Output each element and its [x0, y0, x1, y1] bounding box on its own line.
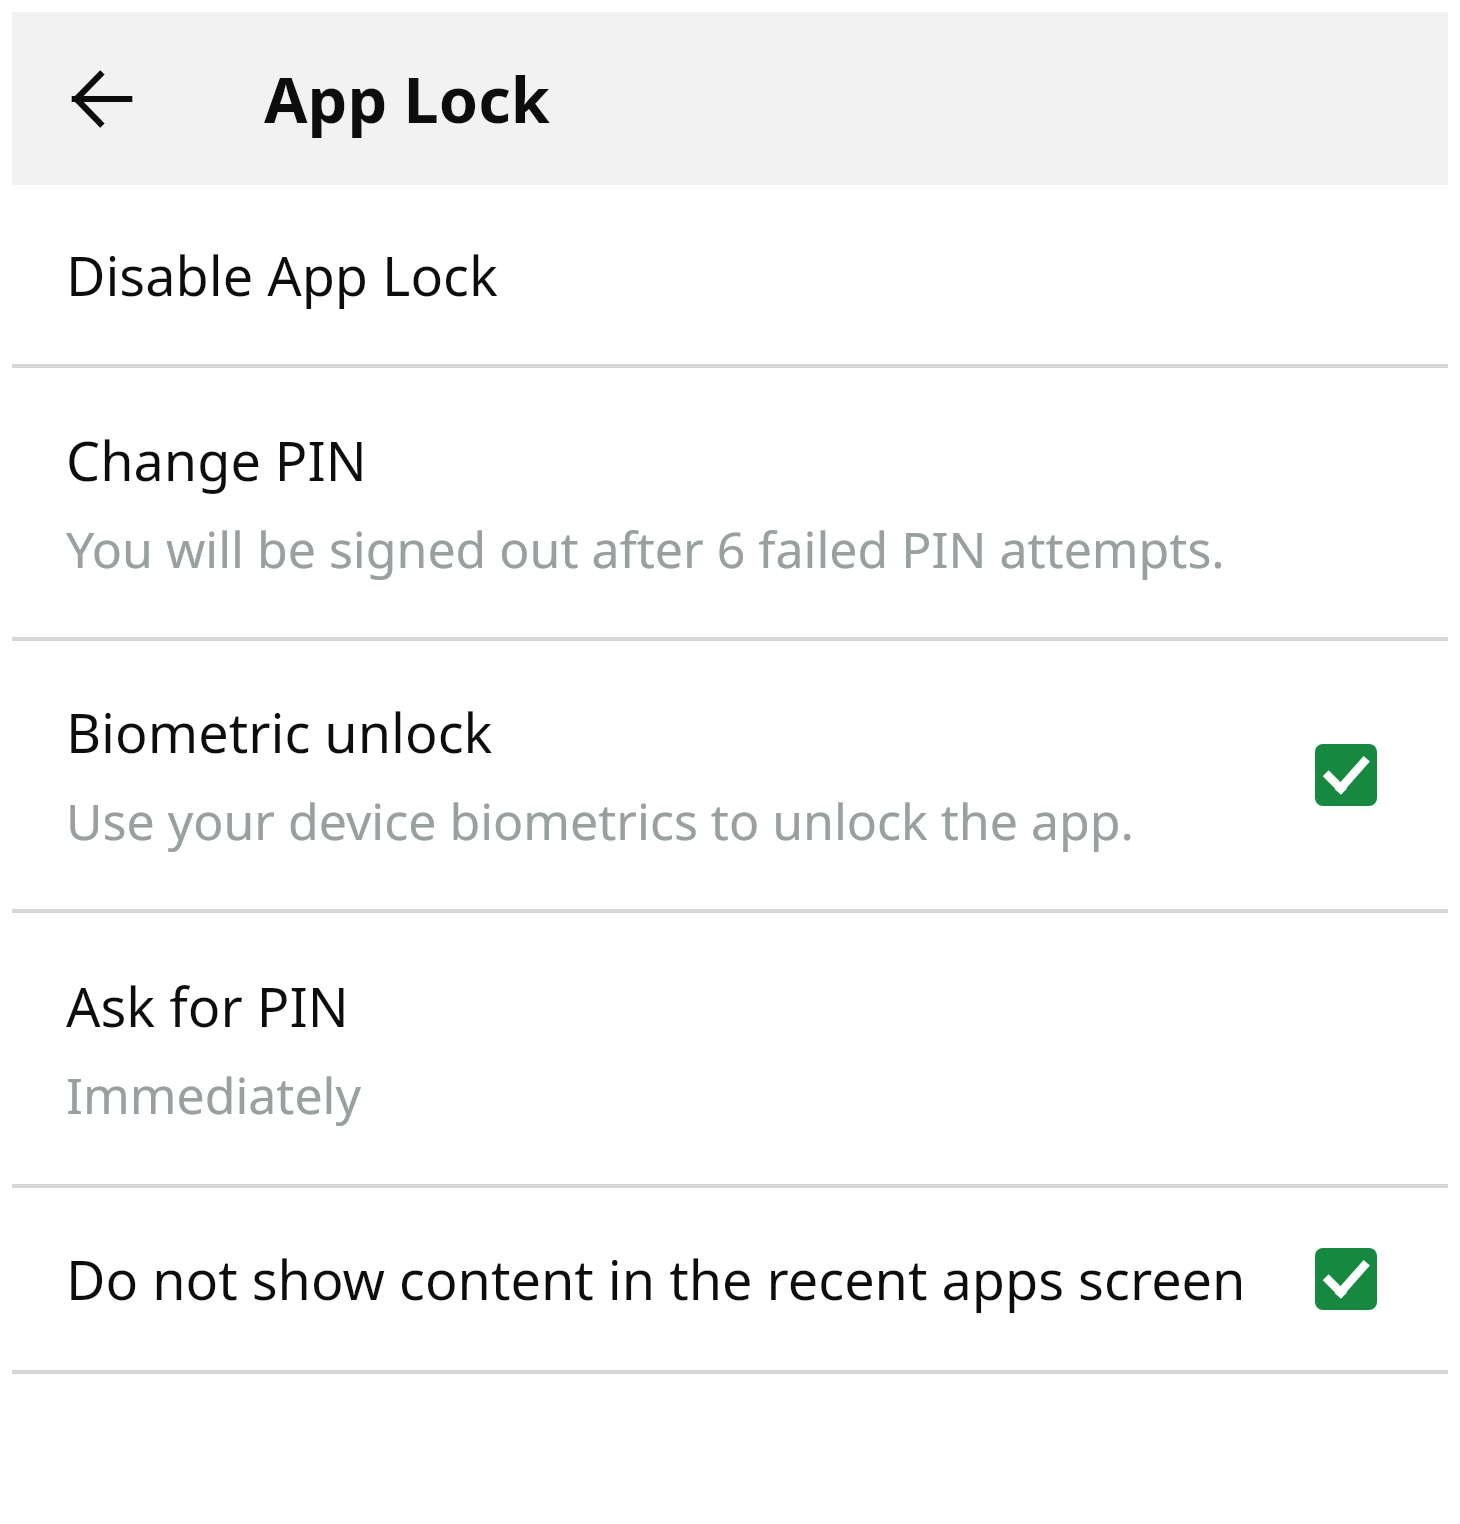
button[interactable]: Disable App Lock: [12, 185, 1448, 364]
staticText: Use your device biometrics to unlock the…: [66, 787, 1134, 855]
staticText: Immediately: [66, 1061, 361, 1129]
button[interactable]: Biometric unlock: [12, 641, 1448, 909]
staticText: Change PIN: [66, 423, 367, 497]
staticText: Disable App Lock: [66, 238, 498, 312]
staticText: Do not show content in the recent apps s…: [66, 1242, 1246, 1316]
button[interactable]: Do not show content in the recent apps s…: [12, 1188, 1448, 1370]
button[interactable]: Ask for PIN: [12, 913, 1448, 1184]
staticText: App Lock: [264, 56, 550, 142]
staticText: You will be signed out after 6 failed PI…: [66, 515, 1225, 583]
button[interactable]: Toggle Do not show content in the recent…: [1298, 1231, 1394, 1327]
button[interactable]: Change PIN: [12, 368, 1448, 637]
button[interactable]: Toggle Biometric unlock: [1298, 727, 1394, 823]
button[interactable]: Back: [52, 49, 152, 149]
staticText: Ask for PIN: [66, 969, 349, 1043]
staticText: Biometric unlock: [66, 695, 493, 769]
